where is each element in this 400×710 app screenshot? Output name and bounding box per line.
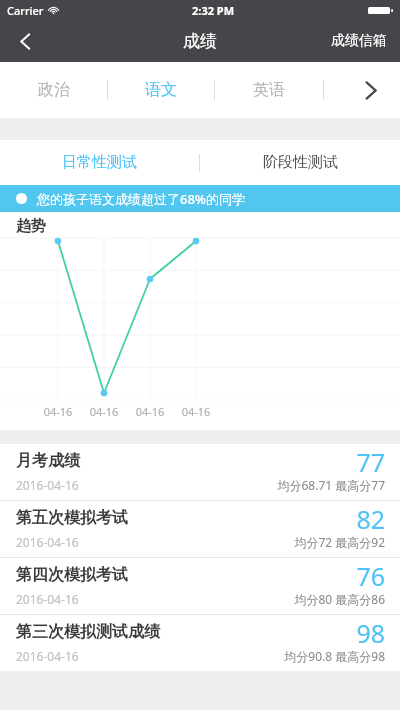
staticText: 第五次模拟考试 [16,508,128,528]
staticText: 您的孩子语文成绩超过了68%的同学 [37,190,245,208]
button[interactable]: 英语 [245,72,293,108]
staticText: 2016-04-16 [16,591,79,607]
staticText: Carrier [7,3,44,18]
button[interactable]: More subjects [354,74,386,106]
staticText: 04-16 [127,404,173,419]
button[interactable]: 第四次模拟考试 [0,558,400,614]
staticText: 政治 [38,80,70,100]
button[interactable]: 第五次模拟考试 [0,501,400,557]
button[interactable]: 成绩信箱 [318,20,400,62]
staticText: 04-16 [173,404,219,419]
staticText: 均分72 最高分92 [0,534,385,550]
staticText: 成绩信箱 [331,32,387,50]
staticText: 均分90.8 最高分98 [0,648,385,664]
button[interactable]: 日常性测试 [0,140,199,185]
staticText: 2016-04-16 [16,648,79,664]
staticText: 英语 [253,80,285,100]
staticText: 76 [0,559,385,593]
staticText: 日常性测试 [62,153,137,172]
staticText: 阶段性测试 [263,153,338,172]
staticText: 77 [0,445,385,479]
staticText: 82 [0,502,385,536]
button[interactable]: 政治 [30,72,78,108]
staticText: 语文 [145,80,177,100]
staticText: 均分68.71 最高分77 [0,477,385,493]
staticText: 2016-04-16 [16,477,79,493]
staticText: 第三次模拟测试成绩 [16,622,160,642]
button[interactable]: 语文 [137,72,185,108]
button[interactable]: 第三次模拟测试成绩 [0,615,400,671]
staticText: 2:32 PM [192,3,235,18]
staticText: 第四次模拟考试 [16,565,128,585]
staticText: 98 [0,616,385,650]
button[interactable]: 月考成绩 [0,444,400,500]
staticText: 均分80 最高分86 [0,591,385,607]
staticText: 04-16 [35,404,81,419]
staticText: 趋势 [16,217,46,236]
staticText: 2016-04-16 [16,534,79,550]
staticText: 月考成绩 [16,451,80,471]
button[interactable]: Back [0,20,50,62]
staticText: 成绩 [183,31,217,52]
staticText: 04-16 [81,404,127,419]
button[interactable]: 阶段性测试 [200,140,400,185]
